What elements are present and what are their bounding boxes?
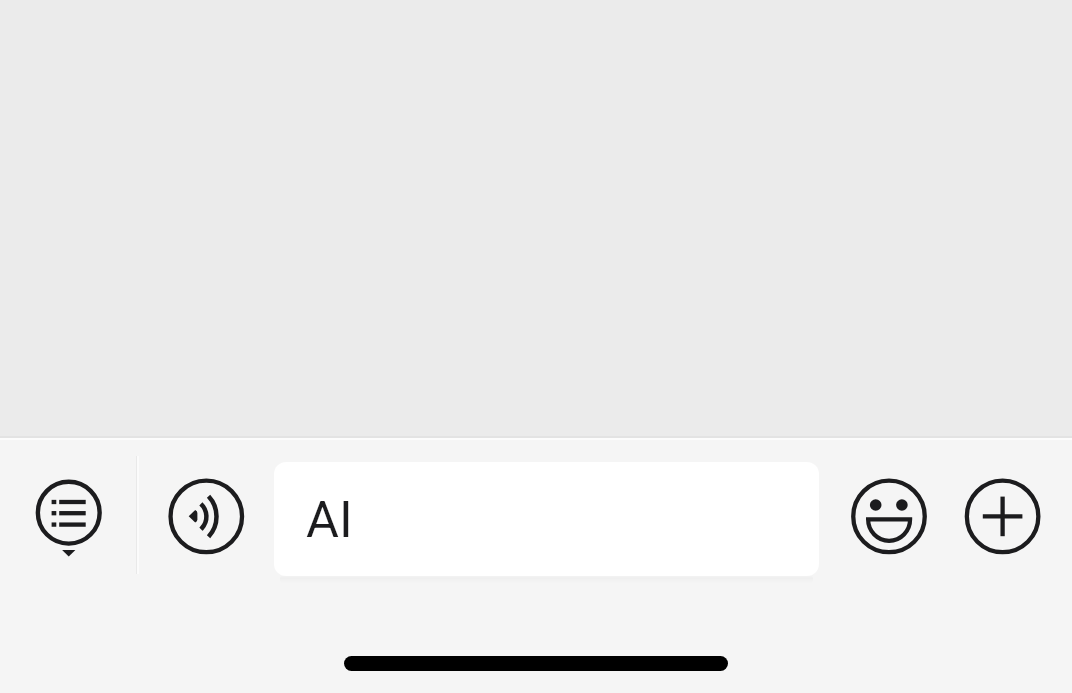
button[interactable]: Add attachment [960, 474, 1046, 560]
button[interactable]: Emoji [847, 474, 933, 560]
button[interactable]: Apps list [24, 468, 114, 566]
button[interactable]: Audio message [164, 474, 250, 560]
button[interactable]: AI [274, 462, 819, 576]
staticText: AI [306, 490, 353, 549]
